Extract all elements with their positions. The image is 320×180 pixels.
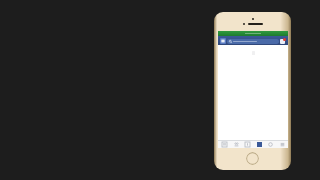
button[interactable]: Notifications (242, 140, 252, 148)
button[interactable] (227, 39, 279, 44)
button[interactable]: News Feed (219, 140, 229, 148)
button[interactable]: Profile (220, 38, 226, 44)
button[interactable]: Friend Requests (231, 140, 241, 148)
button[interactable]: Groups (254, 140, 264, 148)
button[interactable]: Search (265, 140, 275, 148)
button[interactable]: Messages (280, 38, 286, 44)
button[interactable]: Home (246, 152, 259, 165)
button[interactable]: Menu (277, 140, 287, 148)
